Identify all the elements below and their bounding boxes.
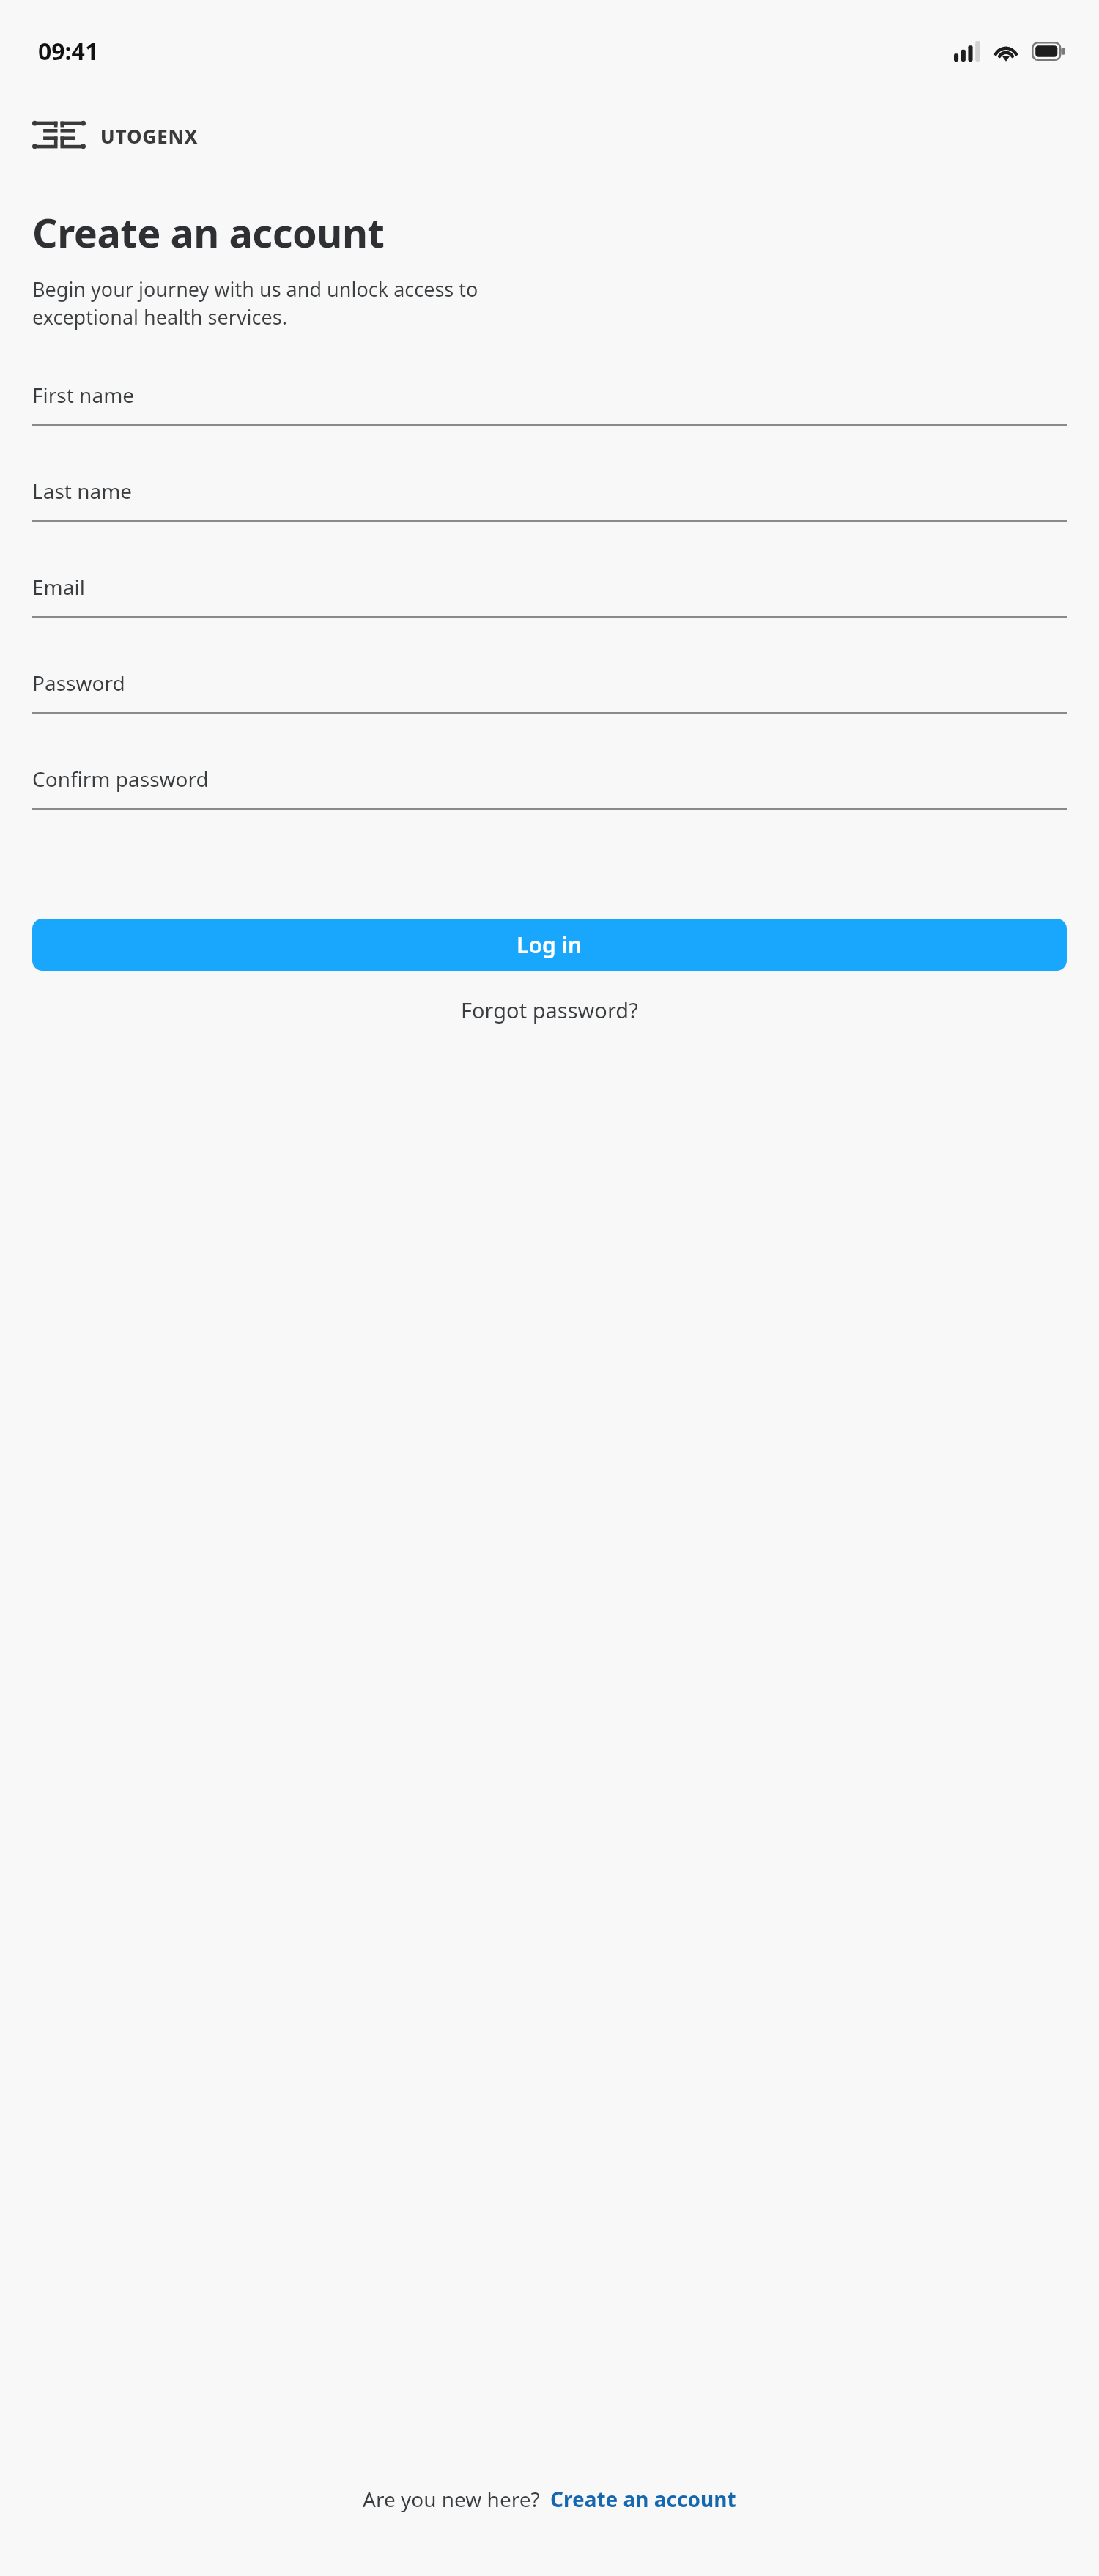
button[interactable]: Utogenx logo (32, 120, 199, 149)
button[interactable]: Last name (0, 465, 1099, 560)
staticText: Create an account (550, 2485, 736, 2513)
button[interactable]: Email (0, 560, 1099, 656)
staticText: Forgot password? (461, 996, 638, 1024)
button[interactable]: Password (0, 656, 1099, 752)
button[interactable]: Log in (32, 919, 1067, 971)
button[interactable]: Create an account (550, 2485, 736, 2513)
staticText: Begin your journey with us and unlock ac… (32, 275, 478, 330)
staticText: Create an account (32, 205, 385, 259)
staticText: Are you new here? (363, 2485, 540, 2513)
button[interactable]: Confirm password (0, 752, 1099, 848)
staticText: Confirm password (32, 765, 209, 793)
button[interactable]: First name (0, 369, 1099, 465)
staticText: Password (32, 669, 125, 697)
staticText: Log in (517, 930, 582, 960)
staticText: UTOGENX (100, 123, 199, 149)
staticText: First name (32, 381, 135, 409)
staticText: Email (32, 573, 85, 601)
staticText: Last name (32, 477, 133, 505)
button[interactable]: Forgot password? (0, 984, 1099, 1036)
staticText: 09:41 (38, 35, 99, 67)
